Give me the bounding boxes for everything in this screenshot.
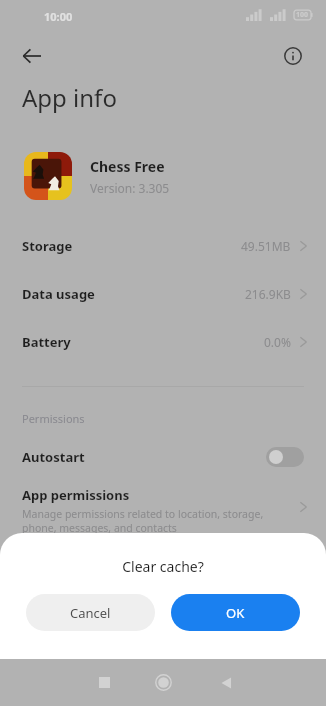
button[interactable]: Autostart (0, 440, 326, 474)
staticText: App permissions (22, 486, 130, 504)
staticText: 10:00 (44, 9, 73, 24)
staticText: Chess Free (90, 157, 165, 176)
staticText: Version: 3.305 (90, 180, 170, 196)
button[interactable]: App permissions (0, 486, 326, 534)
staticText: Autostart (22, 448, 85, 466)
staticText: Cancel (70, 604, 111, 622)
button[interactable]: About (275, 38, 311, 74)
staticText: 49.51MB (241, 238, 291, 254)
button[interactable]: Back (14, 38, 50, 74)
staticText: OK (226, 604, 245, 622)
staticText: 216.9KB (245, 286, 291, 302)
staticText: 100 (296, 10, 309, 20)
staticText: 0.0% (264, 334, 291, 350)
staticText: Manage permissions related to location, … (22, 507, 264, 534)
button[interactable]: Data usage (0, 276, 326, 312)
button[interactable]: Home (141, 659, 185, 706)
staticText: App info (22, 81, 117, 114)
button[interactable]: Cancel (26, 594, 155, 631)
staticText: Permissions (22, 411, 85, 426)
button[interactable]: Back (204, 659, 248, 706)
staticText: Data usage (22, 285, 95, 303)
button[interactable]: Storage (0, 228, 326, 264)
staticText: Battery (22, 333, 71, 351)
button[interactable]: Battery (0, 324, 326, 360)
button[interactable]: Recents (82, 659, 126, 706)
staticText: Storage (22, 237, 73, 255)
button[interactable]: Autostart toggle (266, 447, 304, 467)
button[interactable]: OK (171, 594, 300, 631)
staticText: Clear cache? (122, 557, 204, 576)
